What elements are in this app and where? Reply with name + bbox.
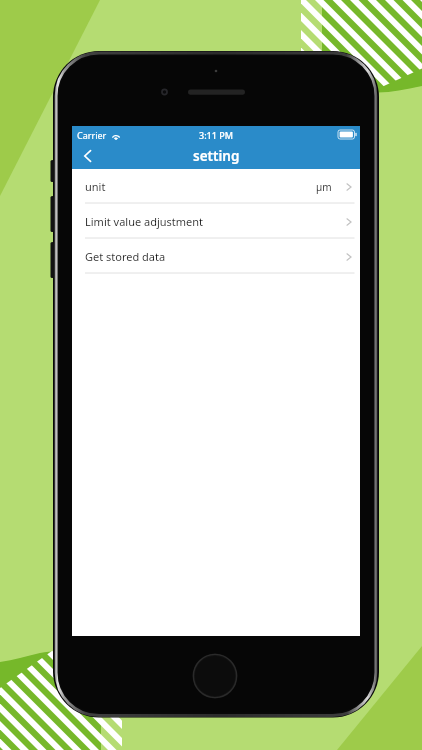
button[interactable]: unit: [72, 169, 360, 204]
staticText: setting: [193, 147, 240, 165]
staticText: µm: [316, 180, 332, 194]
staticText: Get stored data: [85, 249, 166, 264]
button[interactable]: Back: [72, 143, 104, 169]
button[interactable]: Get stored data: [72, 239, 360, 274]
button[interactable]: Limit value adjustment: [72, 204, 360, 239]
staticText: Limit value adjustment: [85, 214, 204, 229]
staticText: Carrier: [77, 129, 107, 141]
staticText: 3:11 PM: [199, 129, 233, 141]
staticText: unit: [85, 179, 106, 194]
